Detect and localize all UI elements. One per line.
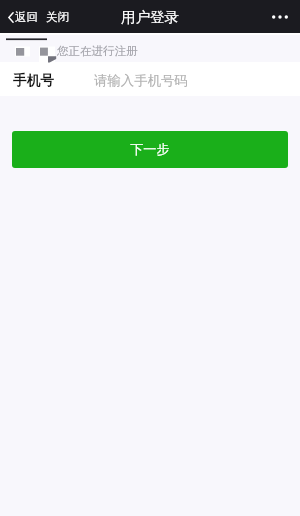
- button[interactable]: 下一步: [12, 131, 288, 168]
- staticText: 您正在进行注册: [57, 44, 138, 58]
- staticText: 返回: [15, 10, 38, 24]
- staticText: 请输入手机号码: [94, 72, 188, 89]
- staticText: 用户登录: [121, 8, 179, 26]
- button[interactable]: 手机号: [0, 63, 300, 97]
- button[interactable]: 返回: [7, 5, 39, 29]
- button[interactable]: 关闭: [45, 5, 70, 29]
- staticText: 下一步: [130, 141, 170, 158]
- button[interactable]: 更多: [262, 7, 300, 27]
- staticText: 手机号: [13, 72, 54, 89]
